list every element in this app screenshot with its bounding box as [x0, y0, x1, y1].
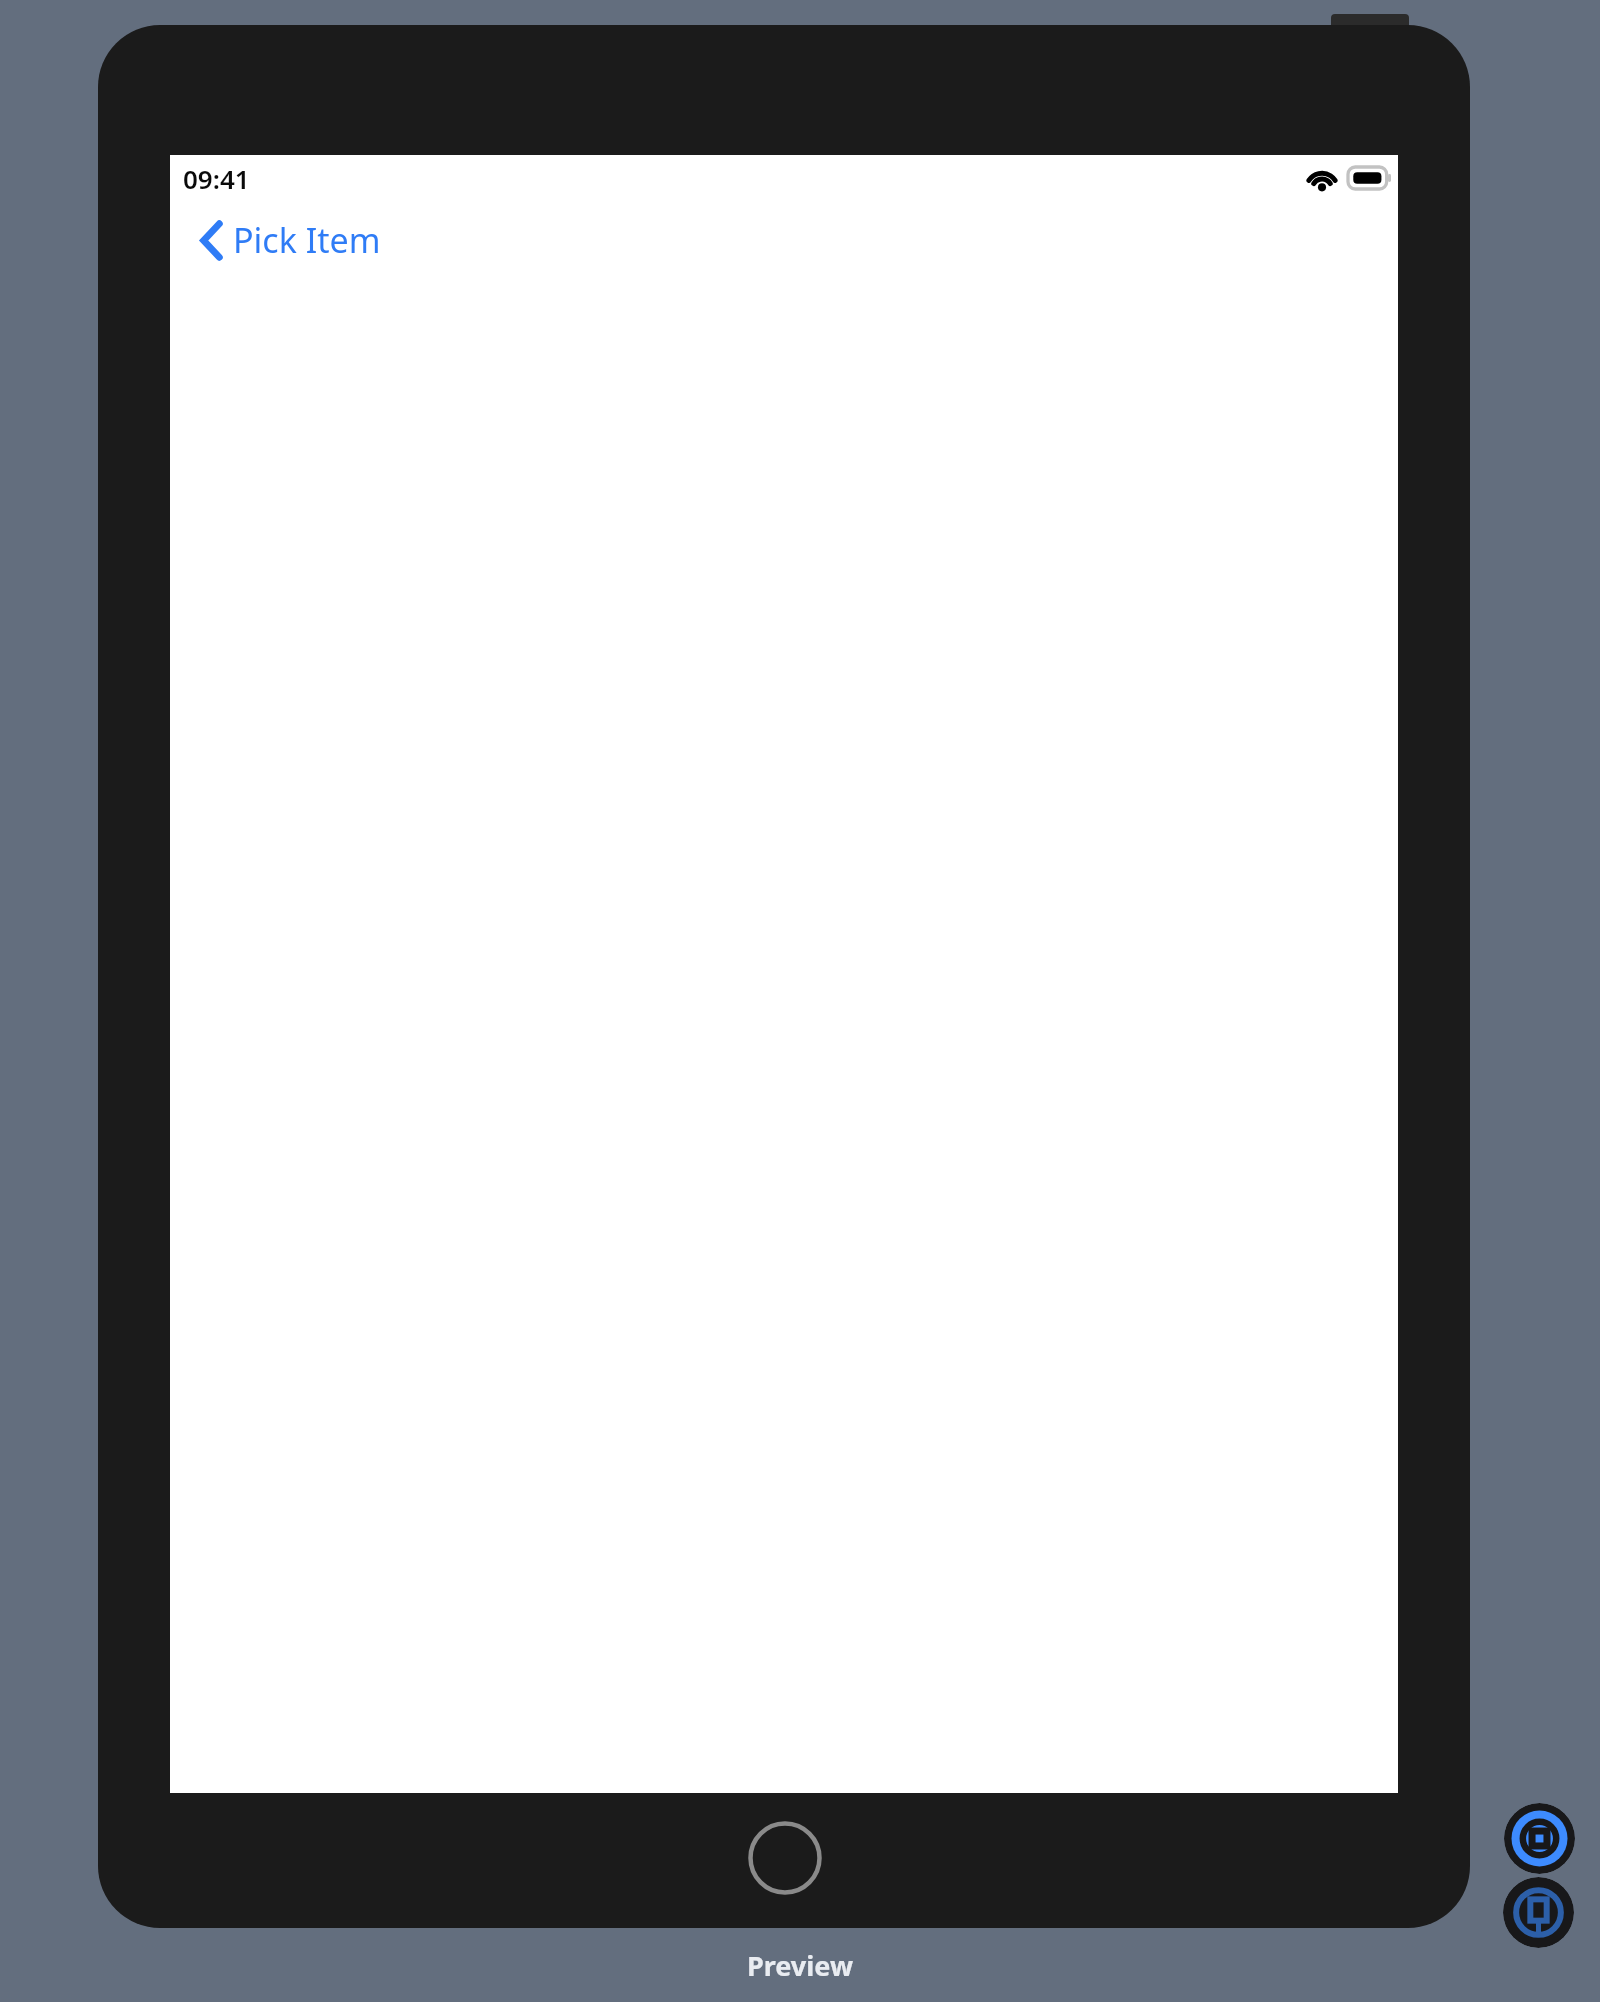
button[interactable]: Pick Item: [196, 209, 385, 271]
staticText: Pick Item: [233, 217, 381, 263]
button[interactable]: Preview tablet mode: [1504, 1803, 1575, 1874]
button[interactable]: Preview phone mode: [1503, 1877, 1574, 1948]
other: Home: [748, 1821, 822, 1895]
staticText: 09:41: [183, 161, 250, 196]
staticText: Preview: [0, 1947, 1600, 1984]
